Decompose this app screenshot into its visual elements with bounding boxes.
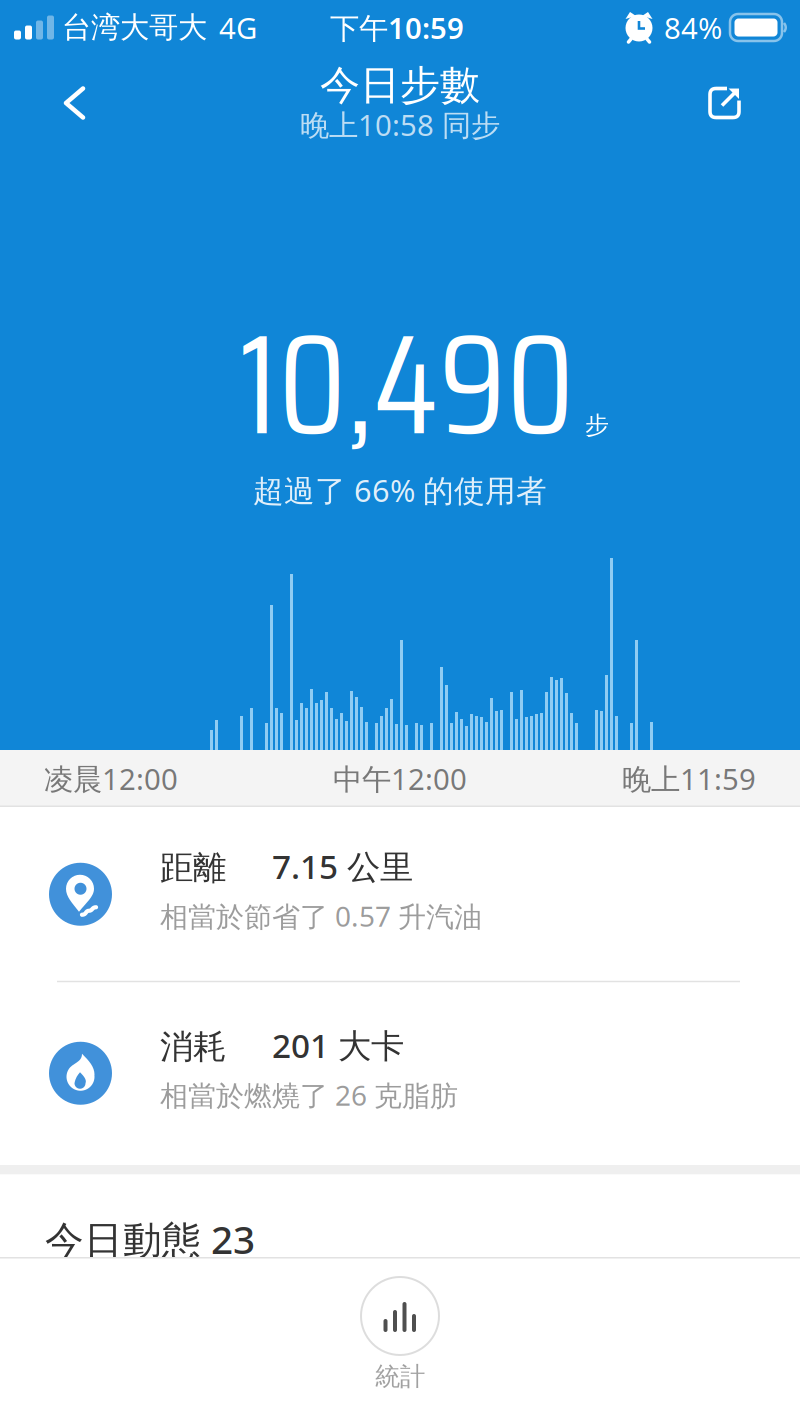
staticText: 凌晨12:00 [44, 759, 178, 798]
staticText: 統計 [375, 1361, 425, 1392]
staticText: 步 [585, 410, 609, 440]
staticText: 下午10:59 [330, 8, 464, 47]
staticText: 中午12:00 [333, 759, 467, 798]
staticText: 消耗 [160, 1026, 226, 1067]
staticText: 7.15 公里 [272, 844, 413, 888]
staticText: 今日步數 [320, 61, 480, 110]
button[interactable]: 距離 [0, 808, 800, 981]
staticText: 距離 [160, 847, 226, 888]
staticText: 台湾大哥大 [62, 9, 207, 45]
button[interactable]: 統計 [361, 1257, 439, 1392]
staticText: 84% [664, 8, 722, 47]
staticText: 超過了 66% 的使用者 [253, 470, 547, 510]
button[interactable]: Back [0, 85, 107, 120]
staticText: 相當於節省了 0.57 升汽油 [160, 897, 482, 935]
staticText: 今日動態 23 [45, 1213, 255, 1265]
button[interactable]: 消耗 [0, 982, 800, 1164]
staticText: 201 大卡 [272, 1023, 404, 1067]
staticText: 4G [219, 8, 257, 47]
staticText: 晚上11:59 [622, 759, 756, 798]
staticText: 晚上10:58 同步 [300, 105, 500, 144]
button[interactable]: Share [688, 86, 800, 119]
staticText: 10,490 [239, 273, 575, 495]
staticText: 相當於燃燒了 26 克脂肪 [160, 1076, 458, 1114]
